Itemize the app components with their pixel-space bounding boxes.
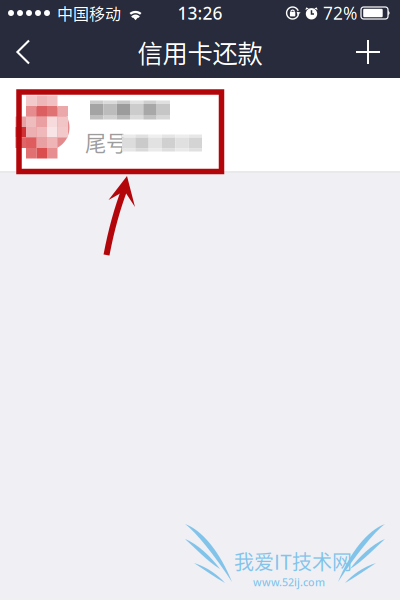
staticText: 中国移动 xyxy=(57,1,121,25)
staticText: 信用卡还款 xyxy=(137,34,262,70)
staticText: 13:26 xyxy=(177,1,222,24)
staticText: 我爱IT技术网 xyxy=(234,546,352,575)
staticText: www.52ij.com xyxy=(253,575,325,589)
staticText: 尾号 xyxy=(85,127,127,157)
button[interactable]: Back xyxy=(0,26,50,77)
button[interactable]: 尾号 xyxy=(0,78,400,173)
staticText: 72% xyxy=(323,1,357,24)
button[interactable]: Add xyxy=(336,26,400,78)
